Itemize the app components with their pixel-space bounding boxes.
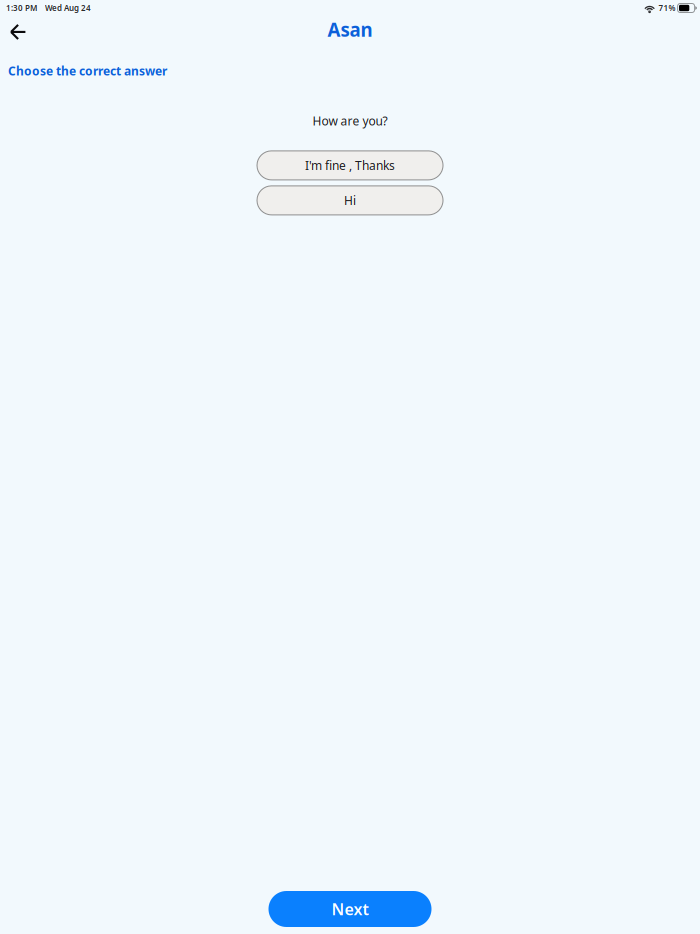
- staticText: Asan: [327, 17, 372, 42]
- staticText: Wed Aug 24: [45, 3, 91, 13]
- button[interactable]: Hi: [257, 186, 443, 215]
- staticText: I'm fine , Thanks: [305, 157, 395, 173]
- staticText: 1:30 PM: [6, 3, 37, 13]
- staticText: Next: [331, 898, 368, 920]
- staticText: Choose the correct answer: [8, 63, 167, 79]
- button[interactable]: I'm fine , Thanks: [257, 151, 443, 180]
- staticText: Hi: [344, 192, 356, 208]
- button[interactable]: Back: [0, 18, 37, 44]
- staticText: How are you?: [312, 113, 387, 129]
- staticText: 71%: [659, 3, 676, 13]
- button[interactable]: Next: [268, 891, 431, 927]
